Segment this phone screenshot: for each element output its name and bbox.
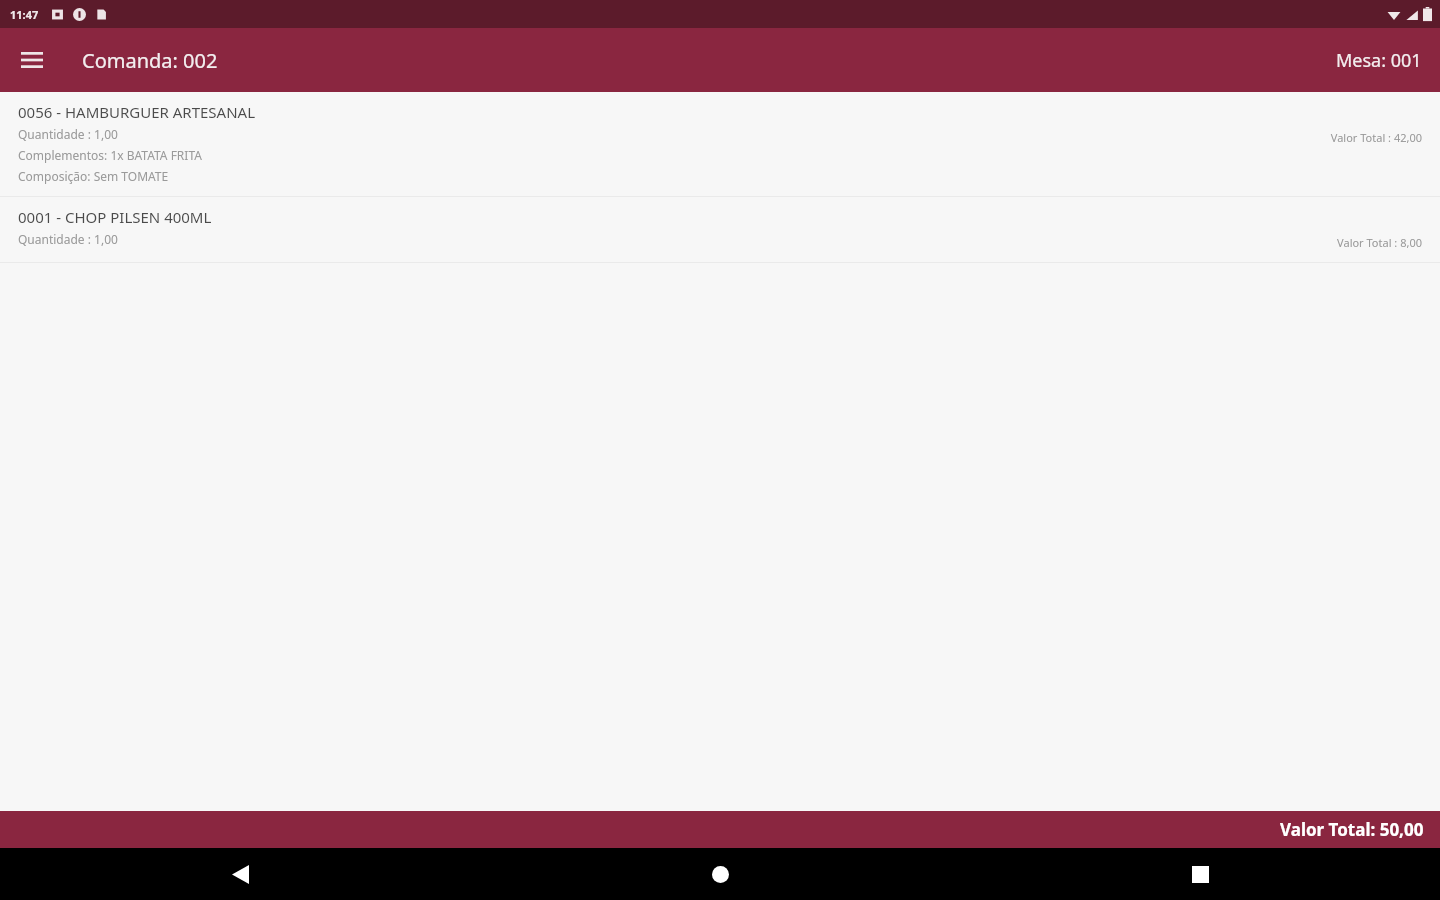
button[interactable]: 0056 - HAMBURGUER ARTESANAL [0, 92, 1440, 196]
staticText: Quantidade : 1,00 [18, 126, 118, 142]
staticText: 11:47 [10, 7, 39, 22]
button[interactable]: Valor Total: 50,00 [0, 811, 1440, 848]
staticText: Valor Total : 42,00 [1330, 130, 1422, 145]
staticText: 0056 - HAMBURGUER ARTESANAL [18, 102, 256, 122]
staticText: Complementos: 1x BATATA FRITA [18, 147, 202, 163]
button[interactable]: 0001 - CHOP PILSEN 400ML [0, 197, 1440, 262]
staticText: Quantidade : 1,00 [18, 231, 118, 247]
button[interactable]: Open navigation menu [12, 40, 52, 80]
staticText: 0001 - CHOP PILSEN 400ML [18, 207, 212, 227]
button[interactable]: Recent apps [960, 848, 1440, 900]
staticText: Valor Total: 50,00 [1280, 818, 1424, 841]
staticText: Composição: Sem TOMATE [18, 168, 169, 184]
staticText: Comanda: 002 [82, 47, 218, 74]
button[interactable]: Home [480, 848, 960, 900]
button[interactable]: Back [0, 848, 480, 900]
staticText: Mesa: 001 [1336, 48, 1422, 73]
staticText: Valor Total : 8,00 [1337, 235, 1422, 250]
